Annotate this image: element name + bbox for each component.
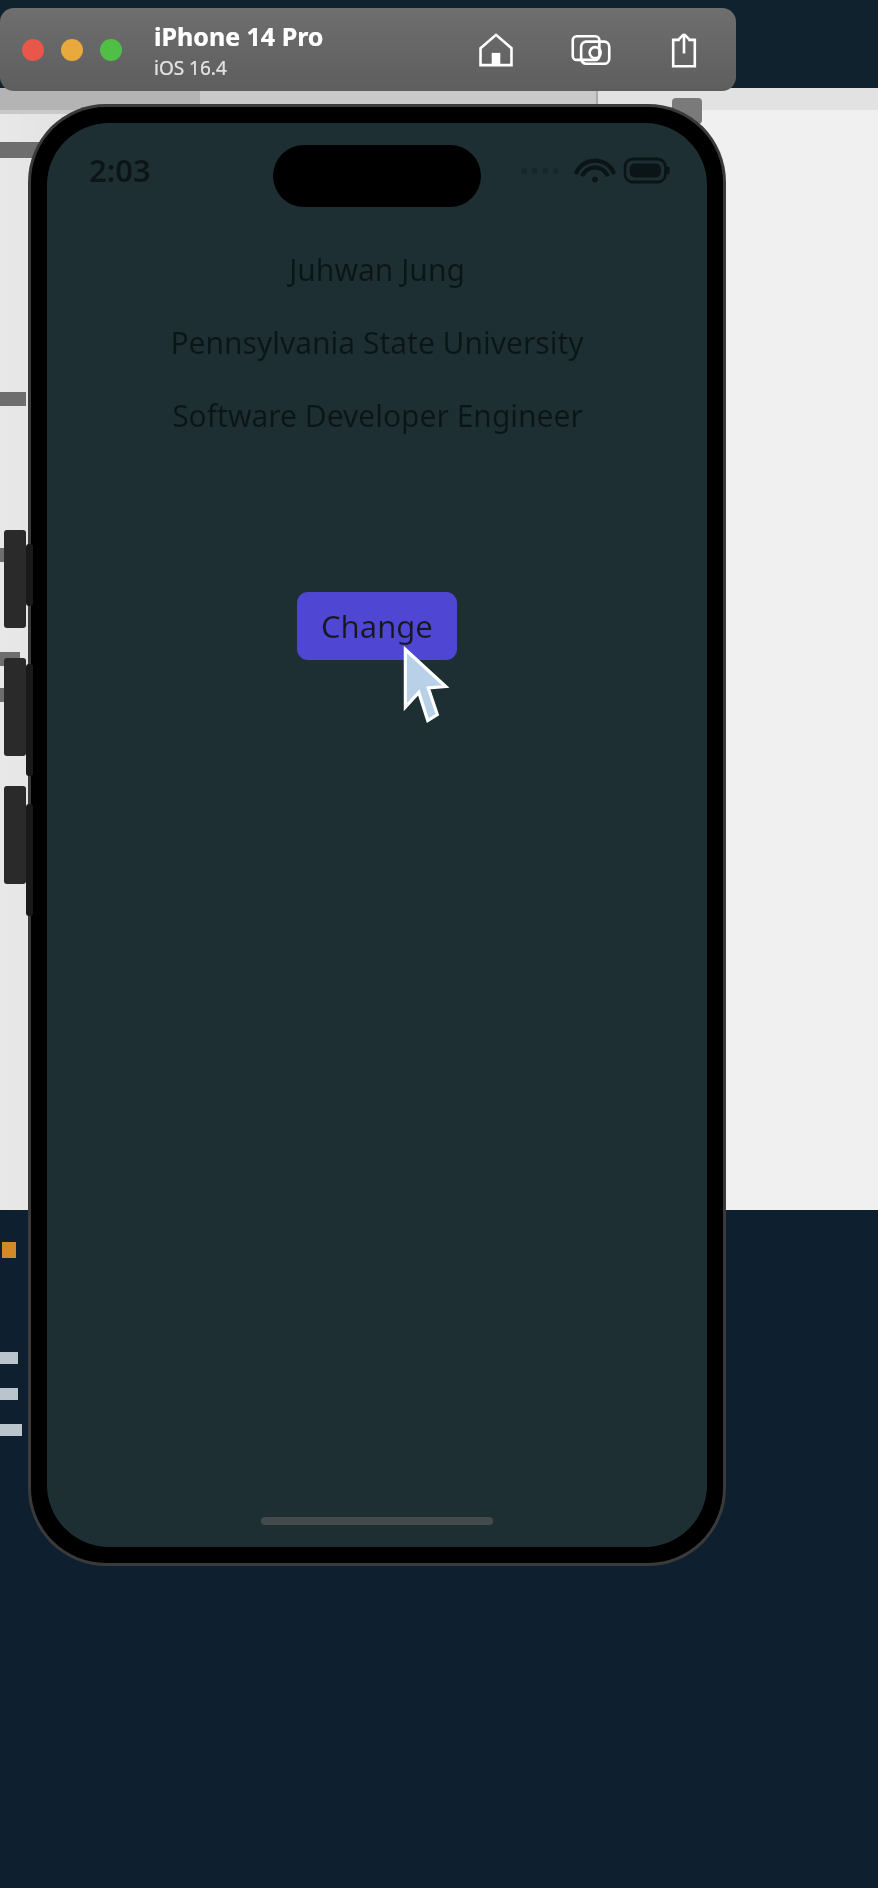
staticText: iOS 16.4 (154, 55, 227, 81)
button[interactable]: Screenshot (568, 27, 614, 73)
staticText: Juhwan Jung (289, 249, 465, 290)
button[interactable]: Close (22, 39, 44, 61)
staticText: iPhone 14 Pro (154, 19, 324, 53)
button[interactable]: Share (662, 28, 706, 72)
staticText: Change (321, 605, 433, 647)
staticText: 2:03 (89, 149, 151, 191)
staticText: Pennsylvania State University (170, 322, 584, 363)
button[interactable]: Change (297, 592, 457, 660)
button[interactable]: Minimize (61, 39, 83, 61)
button[interactable]: Zoom (100, 39, 122, 61)
staticText: Software Developer Engineer (172, 395, 583, 436)
button[interactable]: Home (474, 28, 518, 72)
